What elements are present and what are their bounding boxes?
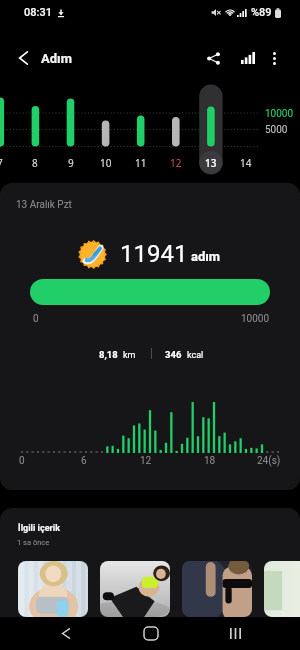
staticText: 8	[32, 156, 38, 170]
button[interactable]: Back	[44, 617, 88, 650]
staticText: 11941	[120, 240, 188, 268]
button[interactable]: Share	[199, 44, 227, 72]
staticText: 18	[204, 455, 216, 467]
button[interactable]: Chart view	[234, 44, 262, 72]
button[interactable]: 11	[128, 155, 154, 170]
staticText: 12	[170, 156, 182, 170]
button[interactable]: Home	[129, 617, 173, 650]
button[interactable]: 13	[198, 155, 224, 170]
staticText: %89	[251, 6, 272, 19]
staticText: 10000	[241, 313, 270, 325]
staticText: kcal	[187, 350, 204, 361]
staticText: 0	[19, 455, 25, 467]
staticText: adım	[191, 249, 221, 264]
button[interactable]: 9	[58, 155, 84, 170]
button[interactable]: Step goal progress	[30, 279, 270, 305]
staticText: 346	[165, 349, 182, 360]
staticText: 10	[100, 156, 112, 170]
staticText: Adım	[41, 51, 72, 66]
button[interactable]: Back	[8, 43, 38, 73]
staticText: km	[123, 350, 136, 361]
staticText: 11	[135, 156, 147, 170]
button[interactable]: More options	[260, 44, 288, 72]
button[interactable]: Recent apps	[213, 617, 257, 650]
button[interactable]: 10	[93, 155, 119, 170]
staticText: 0	[33, 313, 39, 325]
staticText: 1 sa önce	[17, 538, 50, 547]
button[interactable]: Related article	[182, 561, 252, 617]
staticText: 24(s)	[257, 455, 281, 467]
staticText: 6	[81, 455, 87, 467]
staticText: 13 Aralık Pzt	[16, 199, 72, 211]
staticText: 7	[0, 156, 3, 170]
staticText: 9	[68, 156, 74, 170]
staticText: 5000	[265, 124, 288, 136]
button[interactable]: 7	[0, 155, 13, 170]
staticText: 13	[205, 156, 217, 170]
button[interactable]: Related article	[264, 561, 300, 617]
staticText: 12	[140, 455, 152, 467]
button[interactable]: 14	[233, 155, 259, 170]
staticText: 8,18	[99, 349, 118, 360]
staticText: 10000	[265, 108, 294, 120]
staticText: 14	[240, 156, 252, 170]
staticText: 08:31	[24, 6, 52, 19]
button[interactable]: Related article	[100, 561, 170, 617]
button[interactable]: 8	[22, 155, 48, 170]
button[interactable]: Related article	[18, 561, 88, 617]
staticText: İlgili içerik	[18, 523, 60, 534]
button[interactable]: 12	[163, 155, 189, 170]
